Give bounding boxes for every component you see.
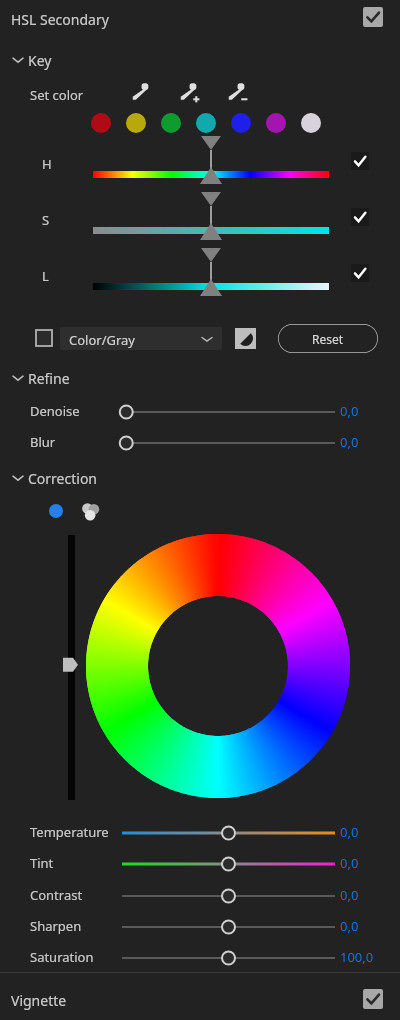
button[interactable]: Key [28, 51, 52, 70]
button[interactable]: Remove color [223, 79, 249, 105]
button[interactable]: Single wheel mode [49, 504, 63, 518]
staticText: Refine [28, 369, 70, 388]
staticText: Saturation [30, 948, 94, 966]
button[interactable]: Color swatch 4 [196, 113, 216, 133]
staticText: 0,0 [340, 402, 388, 420]
staticText: Sharpen [30, 917, 82, 935]
button[interactable]: Blur [122, 436, 335, 450]
staticText: Set color [30, 86, 84, 104]
button[interactable]: H range [93, 171, 329, 178]
staticText: 0,0 [340, 823, 388, 841]
button[interactable]: Color swatch 6 [266, 113, 286, 133]
button[interactable]: Mask toggle [36, 330, 52, 346]
button[interactable]: Color swatch 1 [91, 113, 111, 133]
staticText: Correction [28, 469, 98, 488]
staticText: Key [28, 51, 52, 70]
button[interactable]: Correction [28, 469, 98, 488]
button[interactable]: Contrast [122, 889, 335, 903]
staticText: 0,0 [340, 917, 388, 935]
button[interactable]: Refine [28, 369, 70, 388]
button[interactable]: Reset [278, 324, 378, 353]
staticText: Contrast [30, 886, 83, 904]
button[interactable]: Temperature [122, 826, 335, 840]
button[interactable]: Tint [122, 857, 335, 871]
button[interactable]: Color swatch 3 [161, 113, 181, 133]
button[interactable]: Color swatch 5 [231, 113, 251, 133]
staticText: L [42, 267, 49, 285]
staticText: Denoise [30, 402, 80, 420]
button[interactable]: Color wheel [86, 534, 350, 798]
staticText: Tint [30, 854, 54, 872]
button[interactable]: Sharpen [122, 920, 335, 934]
staticText: Vignette [11, 991, 67, 1010]
button[interactable]: Set color eyedropper [127, 79, 153, 105]
staticText: S [42, 211, 50, 229]
button[interactable]: S enabled [351, 208, 369, 226]
staticText: 0,0 [340, 854, 388, 872]
button[interactable]: Color swatch 2 [126, 113, 146, 133]
button[interactable]: Add color [175, 79, 201, 105]
button[interactable]: Toggle HSL Secondary [363, 7, 383, 27]
button[interactable]: S range [93, 227, 329, 234]
staticText: 0,0 [340, 433, 388, 451]
button[interactable]: L enabled [351, 264, 369, 282]
button[interactable]: Three wheel mode [81, 502, 100, 521]
button[interactable]: Toggle Vignette [363, 989, 383, 1009]
staticText: Reset [312, 331, 344, 347]
staticText: Temperature [30, 823, 109, 841]
button[interactable]: Invert mask [235, 328, 256, 349]
staticText: 0,0 [340, 886, 388, 904]
button[interactable]: L range [93, 283, 329, 290]
staticText: H [42, 155, 52, 173]
button[interactable]: Luma adjust [62, 530, 82, 805]
button[interactable]: Denoise [122, 405, 335, 419]
button[interactable]: Color/Gray [60, 327, 222, 350]
button[interactable]: Saturation [122, 951, 335, 965]
staticText: 100,0 [340, 948, 388, 966]
staticText: Color/Gray [69, 331, 136, 349]
staticText: HSL Secondary [11, 10, 109, 29]
button[interactable]: Color swatch 7 [301, 113, 321, 133]
button[interactable]: H enabled [351, 152, 369, 170]
staticText: Blur [30, 433, 56, 451]
